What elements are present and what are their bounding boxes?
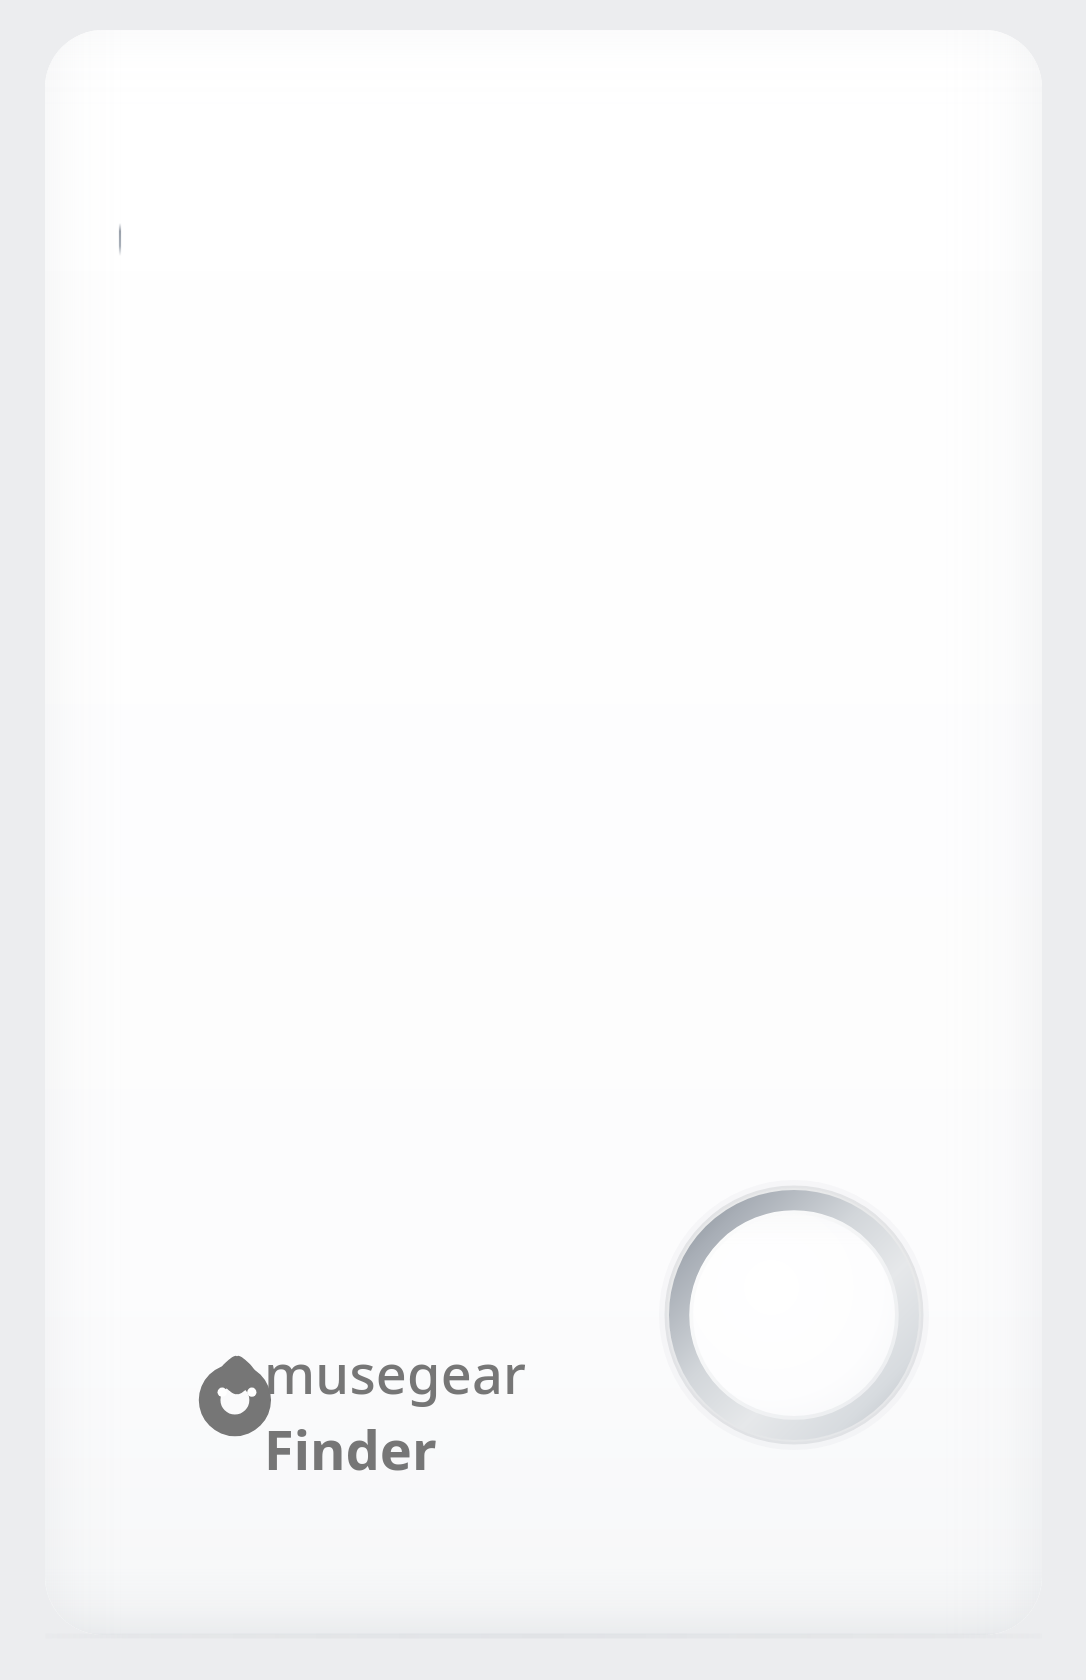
button[interactable]: musegear Finder card bbox=[45, 30, 1042, 1635]
staticText: musegear bbox=[264, 1336, 527, 1410]
staticText: Finder bbox=[264, 1412, 437, 1486]
button[interactable]: Finder button bbox=[667, 1188, 921, 1442]
